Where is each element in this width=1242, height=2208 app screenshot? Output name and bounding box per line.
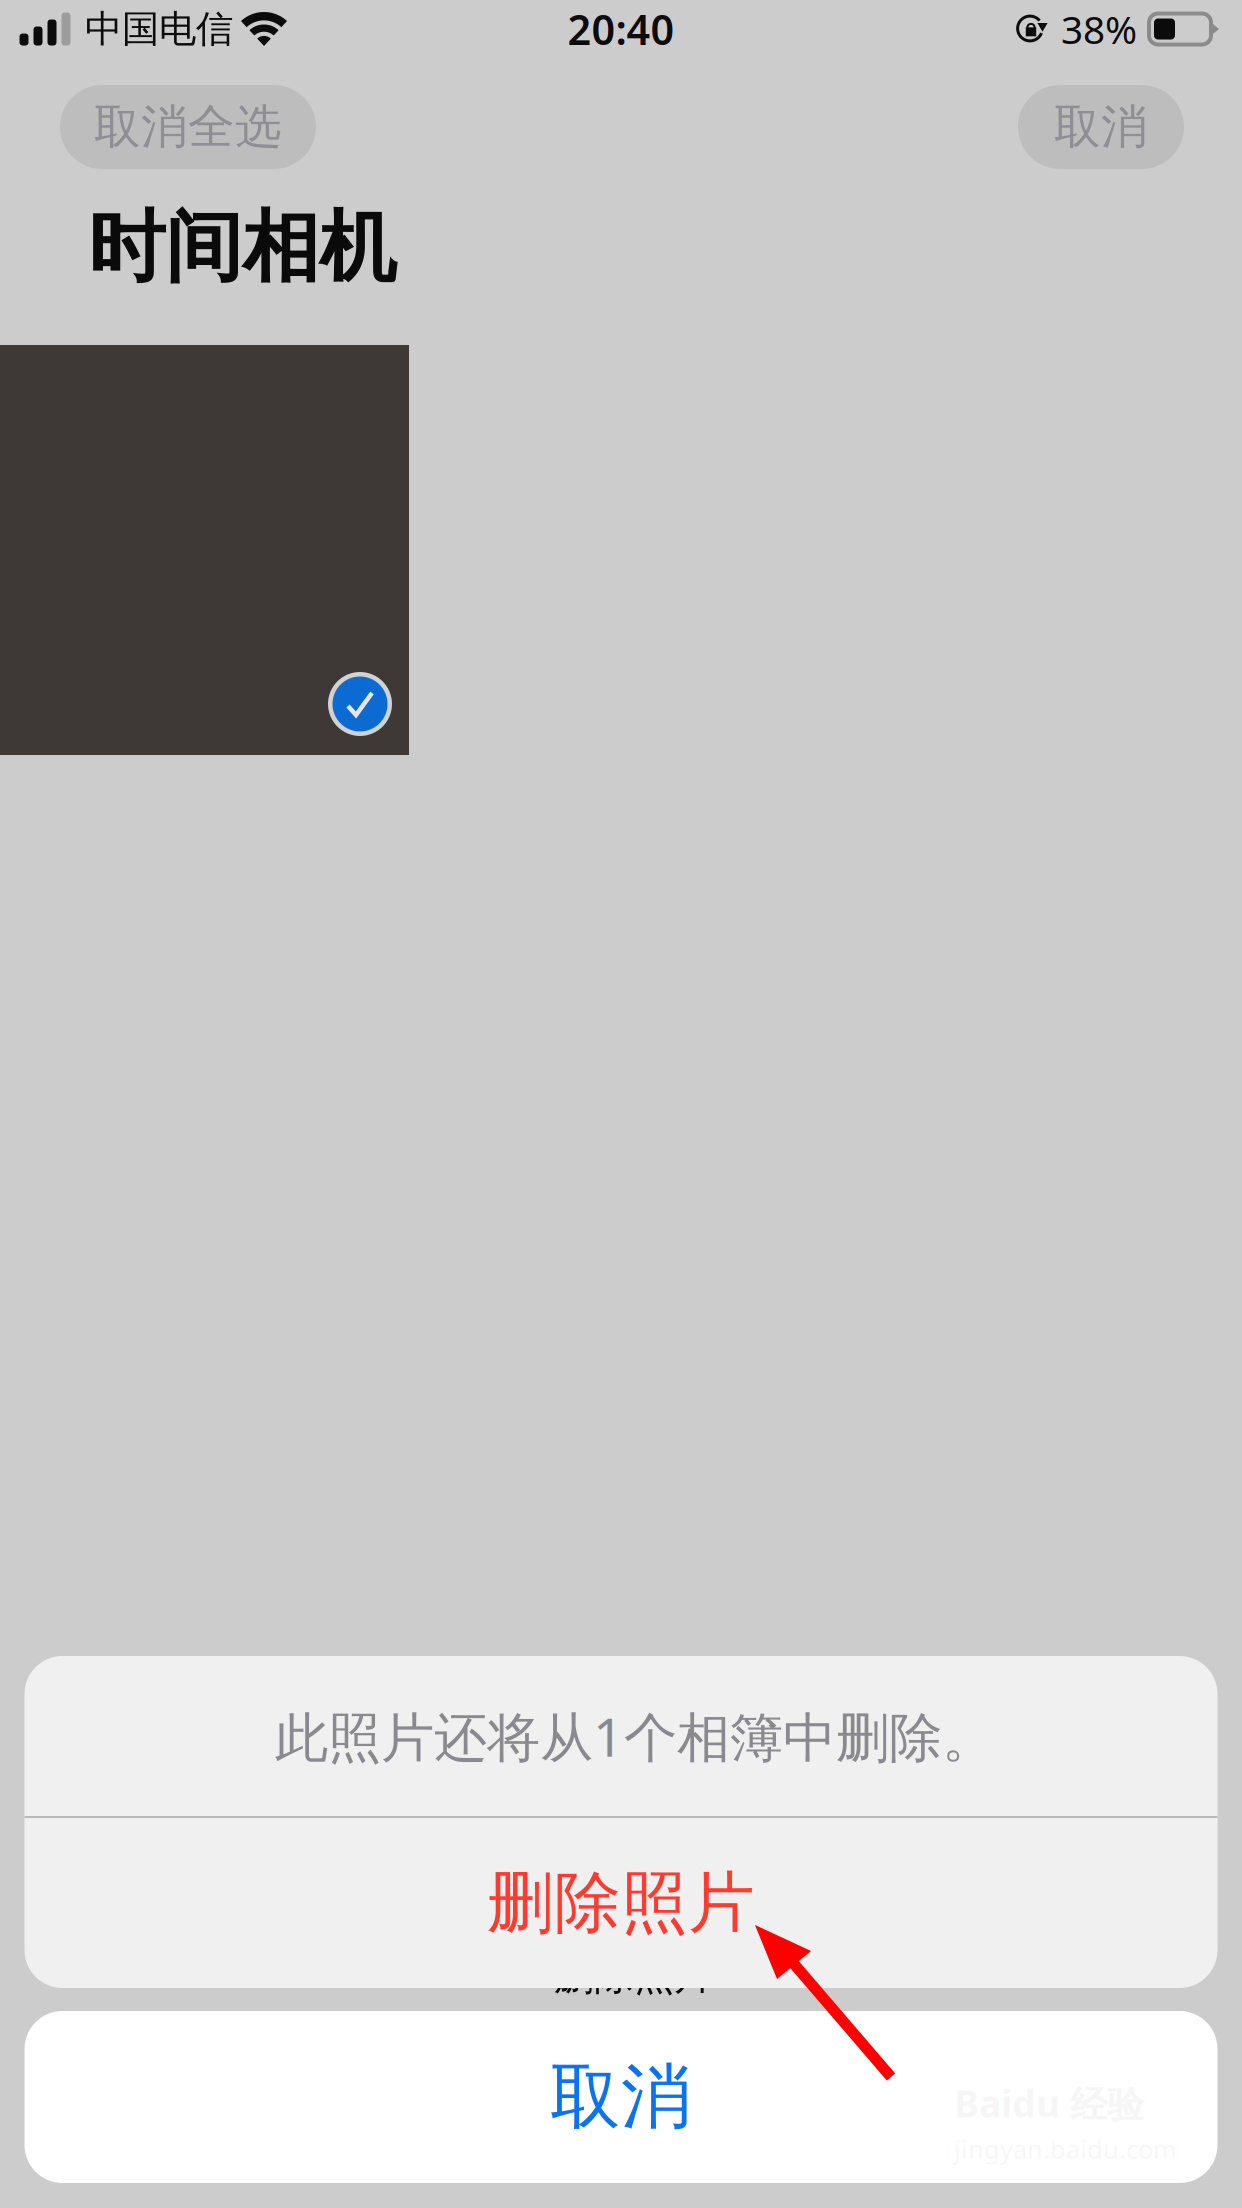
staticText: 删除照片	[487, 1862, 755, 1944]
staticText: 此照片还将从1个相簿中删除。	[275, 1701, 995, 1771]
staticText: 删除照片	[554, 1951, 714, 2000]
button[interactable]: Selected photo	[0, 345, 409, 755]
button[interactable]: 取消全选	[60, 85, 316, 169]
staticText: 取消	[1054, 98, 1148, 156]
staticText: 20:40	[567, 2, 674, 56]
button[interactable]: 取消	[1018, 85, 1184, 169]
staticText: Baidu 经验	[954, 2078, 1144, 2128]
staticText: 取消	[550, 2054, 692, 2140]
staticText: 中国电信	[85, 6, 233, 52]
staticText: 取消全选	[94, 98, 282, 156]
button[interactable]: 删除照片	[24, 1818, 1217, 1988]
button[interactable]: 取消	[24, 2011, 1217, 2183]
staticText: 时间相机	[88, 200, 396, 295]
staticText: 38%	[1061, 3, 1137, 55]
